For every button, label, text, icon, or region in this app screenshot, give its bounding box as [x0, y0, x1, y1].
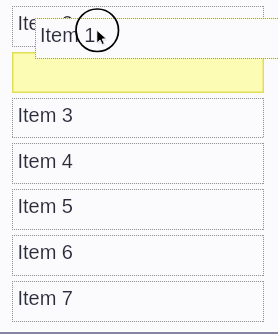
- button[interactable]: [12, 6, 264, 47]
- button[interactable]: [12, 281, 264, 322]
- button[interactable]: [35, 18, 278, 59]
- button[interactable]: [12, 52, 264, 93]
- button[interactable]: [12, 189, 264, 230]
- other: Drag handle pointer: [74, 7, 121, 54]
- button[interactable]: [12, 235, 264, 276]
- button[interactable]: [12, 143, 264, 184]
- button[interactable]: [12, 98, 264, 138]
